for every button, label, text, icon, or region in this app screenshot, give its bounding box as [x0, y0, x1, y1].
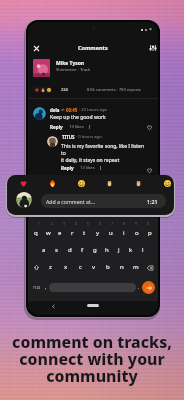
staticText: j	[118, 246, 120, 254]
staticText: r	[71, 229, 74, 237]
staticText: Comments	[78, 44, 108, 51]
staticText: 8.8k comments · 783 reposts	[87, 87, 141, 92]
staticText: 6	[99, 221, 101, 226]
staticText: to	[61, 150, 66, 157]
button[interactable]: n	[115, 260, 129, 274]
staticText: q	[34, 229, 38, 237]
button[interactable]: React	[19, 179, 28, 188]
button[interactable]: j	[113, 243, 125, 257]
staticText: u	[109, 229, 113, 237]
button[interactable]: Close	[31, 43, 41, 53]
staticText: 1	[38, 221, 40, 226]
button[interactable]: React	[77, 179, 86, 188]
staticText: s	[55, 246, 58, 254]
button[interactable]: h	[101, 243, 113, 257]
button[interactable]: Like	[145, 166, 153, 174]
staticText: m	[133, 263, 139, 271]
staticText: k	[129, 246, 133, 254]
staticText: v	[92, 263, 96, 271]
button[interactable]: Send	[142, 281, 155, 294]
staticText: 9	[135, 221, 137, 226]
staticText: at	[61, 107, 65, 113]
staticText: z	[49, 263, 52, 271]
staticText: TITUS	[62, 134, 75, 140]
staticText: comment on tracks, connect with your com…	[12, 331, 172, 387]
staticText: b	[106, 263, 110, 271]
staticText: 8	[123, 221, 125, 226]
staticText: x	[64, 263, 68, 271]
button[interactable]: z	[43, 260, 58, 274]
button[interactable]: l	[137, 243, 149, 257]
staticText: 13 likes	[69, 124, 84, 130]
button[interactable]: React	[48, 179, 57, 188]
button[interactable]: Backspace	[143, 261, 156, 274]
staticText: a	[42, 246, 46, 254]
button[interactable]: o	[130, 226, 143, 240]
button[interactable]: f	[76, 243, 89, 257]
button[interactable]: v	[87, 260, 101, 274]
staticText: d	[68, 246, 72, 254]
staticText: 2	[51, 221, 53, 226]
staticText: Add a comment at...	[46, 198, 95, 205]
staticText: t	[83, 229, 86, 237]
button[interactable]: i	[117, 226, 130, 240]
staticText: 00:45	[66, 107, 78, 113]
staticText: e	[58, 229, 62, 237]
button[interactable]: React	[105, 179, 114, 188]
button[interactable]: e	[54, 226, 66, 240]
button[interactable]: React	[134, 179, 143, 188]
staticText: g	[93, 246, 97, 254]
button[interactable]: k	[125, 243, 137, 257]
button[interactable]: Space	[49, 283, 136, 292]
staticText: 1:21	[147, 198, 158, 205]
staticText: ?123	[33, 285, 41, 290]
staticText: dela	[50, 107, 60, 113]
staticText: o	[135, 229, 139, 237]
staticText: 7	[111, 221, 113, 226]
staticText: 0	[147, 221, 149, 226]
staticText: 3	[63, 221, 65, 226]
button[interactable]: m	[129, 260, 143, 274]
staticText: Shemeeee · Track	[56, 67, 91, 73]
button[interactable]: t	[78, 226, 91, 240]
button[interactable]: x	[58, 260, 73, 274]
button[interactable]: g	[89, 243, 101, 257]
button[interactable]: Add a comment at...	[41, 194, 166, 208]
button[interactable]: Settings	[148, 43, 157, 52]
button[interactable]: Like	[145, 123, 153, 131]
staticText: Mike Tyson	[56, 60, 85, 67]
button[interactable]: w	[42, 226, 54, 240]
staticText: i	[123, 229, 125, 237]
button[interactable]: r	[66, 226, 78, 240]
button[interactable]: p	[143, 226, 156, 240]
button[interactable]: q	[30, 226, 42, 240]
staticText: ,	[45, 284, 47, 291]
button[interactable]: c	[73, 260, 87, 274]
staticText: 234	[61, 87, 68, 92]
staticText: w	[46, 229, 51, 237]
button[interactable]: s	[50, 243, 63, 257]
other: Back	[51, 304, 56, 309]
button[interactable]: d	[63, 243, 76, 257]
button[interactable]: a	[37, 243, 50, 257]
staticText: 4	[75, 221, 77, 226]
staticText: it daily, it stays on repeat	[61, 157, 120, 164]
button[interactable]: Shift	[30, 261, 43, 274]
button[interactable]: b	[101, 260, 115, 274]
staticText: 13 likes	[80, 165, 95, 171]
staticText: Keep up the good work	[50, 114, 106, 121]
staticText: h	[105, 246, 109, 254]
button[interactable]: Reply	[50, 124, 63, 130]
staticText: 5	[87, 221, 89, 226]
staticText: · 0 hours ago	[76, 134, 102, 140]
staticText: f	[81, 246, 84, 254]
button[interactable]: ?123	[31, 281, 43, 293]
staticText: c	[79, 263, 82, 271]
staticText: .	[138, 284, 140, 291]
button[interactable]: u	[104, 226, 117, 240]
button[interactable]: React	[163, 179, 172, 188]
button[interactable]: Reply	[61, 165, 74, 171]
staticText: l	[142, 246, 144, 254]
button[interactable]: y	[91, 226, 104, 240]
staticText: y	[96, 229, 100, 237]
